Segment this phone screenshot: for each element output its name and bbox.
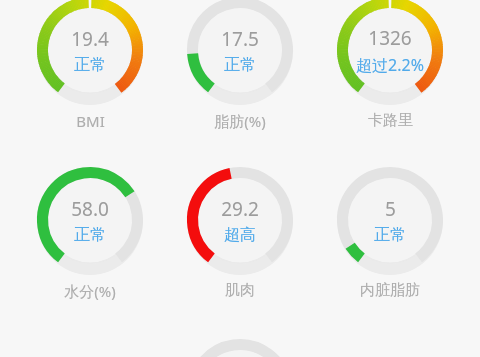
button[interactable]: BMI 19.4 正常 [24,0,156,131]
button[interactable]: 更多 [174,339,306,357]
staticText: BMI [76,111,105,131]
staticText: 19.4 [71,26,109,52]
staticText: 5 [385,196,396,222]
staticText: 正常 [374,225,406,245]
staticText: 卡路里 [368,111,413,130]
staticText: 超高 [224,225,256,245]
staticText: 1326 [368,25,412,51]
button[interactable]: 卡路里 1326 超过2.2% [324,0,456,130]
button[interactable]: 脂肪 17.5 正常 [174,0,306,131]
staticText: 正常 [74,55,106,75]
staticText: 29.2 [221,196,259,222]
staticText: 正常 [74,225,106,245]
staticText: 58.0 [71,196,109,222]
button[interactable]: 肌肉 29.2 超高 [174,167,306,300]
staticText: 脂肪(%) [214,111,266,131]
button[interactable]: 内脏脂肪 5 正常 [324,167,456,300]
staticText: 水分(%) [64,281,116,301]
staticText: 超过2.2% [356,54,424,76]
staticText: 肌肉 [225,281,255,300]
staticText: 17.5 [221,26,259,52]
button[interactable]: 水分 58.0 正常 [24,167,156,301]
staticText: 正常 [224,55,256,75]
staticText: 内脏脂肪 [360,281,420,300]
